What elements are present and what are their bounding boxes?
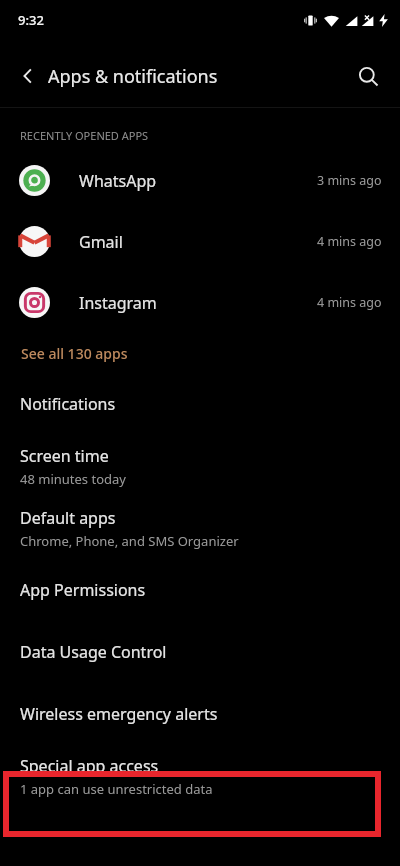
button[interactable]: Screen time	[0, 435, 400, 497]
staticText: Default apps	[20, 507, 116, 529]
staticText: 48 minutes today	[20, 470, 126, 488]
button[interactable]: Notifications	[0, 373, 400, 435]
staticText: 4 mins ago	[317, 233, 382, 250]
button[interactable]: Data Usage Control	[0, 621, 400, 683]
button[interactable]: WhatsApp	[0, 150, 400, 211]
staticText: Data Usage Control	[20, 641, 167, 663]
button[interactable]: Instagram	[0, 272, 400, 333]
button[interactable]: Search	[346, 54, 390, 98]
staticText: Special app access	[20, 755, 159, 777]
staticText: Gmail	[79, 231, 123, 253]
staticText: See all 130 apps	[21, 344, 128, 363]
button[interactable]: Wireless emergency alerts	[0, 683, 400, 745]
button[interactable]: Back	[8, 56, 48, 96]
button[interactable]: See all 130 apps	[0, 333, 400, 373]
staticText: Chrome, Phone, and SMS Organizer	[20, 532, 239, 550]
staticText: Apps & notifications	[48, 64, 218, 89]
button[interactable]: Special app access	[0, 745, 400, 807]
staticText: Notifications	[20, 393, 116, 415]
staticText: 1 app can use unrestricted data	[20, 780, 213, 798]
staticText: WhatsApp	[79, 170, 157, 192]
staticText: App Permissions	[20, 579, 146, 601]
staticText: Wireless emergency alerts	[20, 703, 218, 725]
staticText: RECENTLY OPENED APPS	[20, 128, 149, 143]
button[interactable]: Default apps	[0, 497, 400, 559]
button[interactable]: App Permissions	[0, 559, 400, 621]
staticText: 3 mins ago	[317, 172, 382, 189]
staticText: Screen time	[20, 445, 109, 467]
staticText: 4 mins ago	[317, 294, 382, 311]
staticText: 9:32	[18, 11, 44, 29]
button[interactable]: Gmail	[0, 211, 400, 272]
staticText: Instagram	[79, 292, 157, 314]
